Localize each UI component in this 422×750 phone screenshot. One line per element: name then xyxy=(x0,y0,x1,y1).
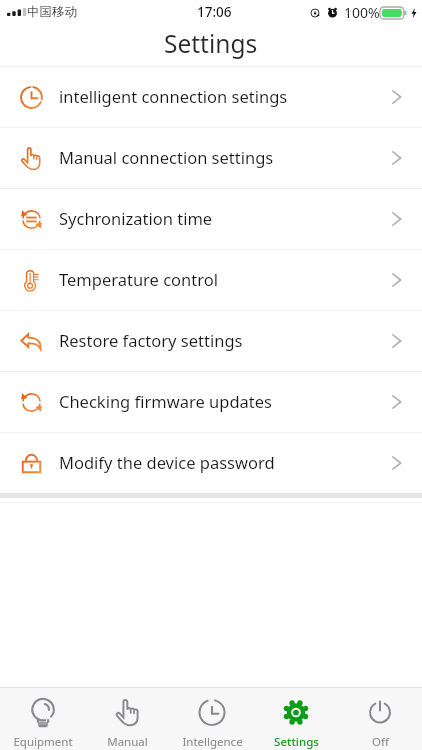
staticText: Temperature control xyxy=(59,268,218,290)
button[interactable]: Manual xyxy=(85,688,170,750)
staticText: intelligent connection setings xyxy=(59,85,288,107)
staticText: Settings xyxy=(164,27,258,60)
button[interactable]: Off xyxy=(338,688,422,750)
staticText: Checking firmware updates xyxy=(59,390,272,412)
button[interactable]: Settings xyxy=(254,688,338,750)
staticText: 中国移动 xyxy=(27,4,77,20)
button[interactable]: Modify the device password xyxy=(0,433,422,493)
staticText: Off xyxy=(372,734,389,750)
staticText: Equipment xyxy=(13,734,73,750)
button[interactable]: Restore factory settings xyxy=(0,311,422,371)
staticText: 17:06 xyxy=(197,3,232,21)
button[interactable]: Equipment xyxy=(0,688,85,750)
staticText: Manual connection settings xyxy=(59,146,274,168)
staticText: Sychronization time xyxy=(59,207,213,229)
staticText: Settings xyxy=(274,734,319,750)
button[interactable]: Sychronization time xyxy=(0,189,422,249)
staticText: Intellgence xyxy=(182,734,243,750)
staticText: Restore factory settings xyxy=(59,329,243,351)
button[interactable]: intelligent connection setings xyxy=(0,67,422,127)
staticText: Modify the device password xyxy=(59,451,275,473)
button[interactable]: Temperature control xyxy=(0,250,422,310)
button[interactable]: Manual connection settings xyxy=(0,128,422,188)
staticText: 100% xyxy=(344,3,380,22)
button[interactable]: Intellgence xyxy=(170,688,254,750)
staticText: Manual xyxy=(107,734,148,750)
button[interactable]: Checking firmware updates xyxy=(0,372,422,432)
